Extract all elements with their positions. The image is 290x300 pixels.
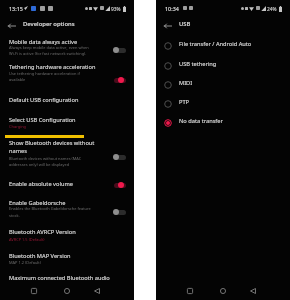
staticText: Maximum connected Bluetooth audio [9,274,110,282]
staticText: Mobile data always active [9,38,78,46]
button[interactable]: Off [112,45,128,55]
button[interactable]: Recents [181,282,199,300]
staticText: 93% [111,6,121,13]
button[interactable] [0,250,134,272]
button[interactable]: No data transfer [156,113,290,132]
button[interactable]: Home [58,282,76,300]
staticText: Enable Gabeldorsche [9,199,66,207]
staticText: Always keep mobile data active, even whe… [9,45,89,50]
staticText: Developer options [23,20,75,28]
staticText: 24% [267,6,277,13]
staticText: Enables the Bluetooth Gabeldorsche featu… [9,206,91,211]
staticText: 10:34 [165,5,179,12]
button[interactable]: Back [244,282,262,300]
staticText: PTP [179,98,190,106]
button[interactable]: USB tethering [156,56,290,75]
button[interactable] [0,113,134,138]
button[interactable] [0,197,134,226]
staticText: AVRCP 1.5 (Default) [9,237,45,242]
staticText: Wi-Fi is active (for fast network switch… [9,51,87,56]
staticText: 13:15 [9,5,23,12]
staticText: File transfer / Android Auto [179,40,252,48]
button[interactable] [0,272,134,284]
button[interactable]: Navigate up [161,19,175,33]
staticText: Enable absolute volume [9,180,73,188]
staticText: Bluetooth MAP Version [9,252,71,260]
staticText: No data transfer [179,117,223,125]
button[interactable]: Navigate up [5,19,19,33]
staticText: USB [179,20,191,28]
staticText: Tethering hardware acceleration [9,63,96,71]
staticText: addresses only) will be displayed [9,162,70,167]
staticText: stock. [9,213,20,218]
button[interactable]: File transfer / Android Auto [156,36,290,55]
staticText: MAP 1.2 (Default) [9,260,41,265]
staticText: Select USB Configuration [9,116,76,124]
button[interactable]: Home [214,282,232,300]
button[interactable] [0,178,134,197]
button[interactable]: PTP [156,94,290,113]
staticText: MIDI [179,79,193,87]
staticText: names [9,147,27,155]
button[interactable]: Recents [25,282,43,300]
staticText: Use tethering hardware acceleration if [9,71,80,76]
button[interactable] [0,94,134,112]
button[interactable] [0,33,134,59]
staticText: USB tethering [179,60,217,68]
button[interactable] [0,227,134,249]
button[interactable] [0,139,134,177]
staticText: Default USB configuration [9,96,79,104]
button[interactable] [0,62,134,92]
staticText: Bluetooth devices without names (MAC [9,156,82,161]
staticText: Bluetooth AVRCP Version [9,228,76,236]
button[interactable]: Off [112,207,128,217]
button[interactable]: Off [112,152,128,162]
staticText: Show Bluetooth devices without [9,139,95,147]
button[interactable]: MIDI [156,75,290,94]
button[interactable]: Back [88,282,106,300]
staticText: available [9,77,26,82]
button[interactable]: On [112,180,128,190]
button[interactable]: On [112,75,128,85]
staticText: Charging [9,124,27,129]
